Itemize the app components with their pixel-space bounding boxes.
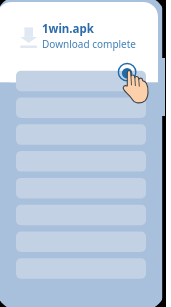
staticText: Download complete <box>42 37 136 51</box>
staticText: 1win.apk <box>42 21 94 37</box>
